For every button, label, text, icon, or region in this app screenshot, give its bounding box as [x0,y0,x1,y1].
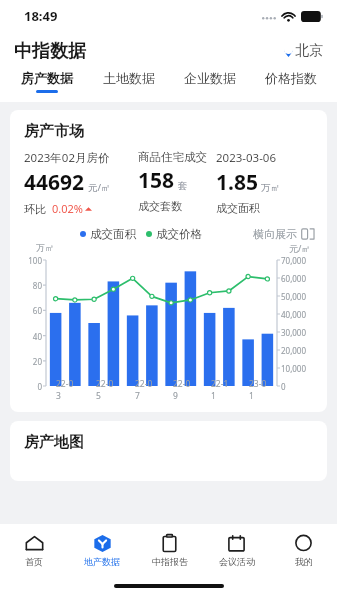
staticText: 20 [24,356,42,367]
staticText: 成交套数 [138,199,182,213]
staticText: 土地数据 [103,70,155,86]
staticText: 成交价格 [156,227,202,241]
staticText: 中指报告 [152,556,188,567]
button[interactable]: 房产数据 [6,70,88,102]
staticText: 70,000 [281,255,315,266]
staticText: 地产数据 [84,556,120,567]
staticText: 中指数据 [14,40,86,63]
staticText: 首页 [25,556,43,567]
staticText: 158 [138,166,175,195]
staticText: 商品住宅成交 [138,150,207,164]
button[interactable]: 价格指数 [250,70,331,102]
staticText: 价格指数 [265,70,317,86]
staticText: 23-01 [249,378,268,402]
staticText: 80 [24,280,42,291]
staticText: 成交面积 [90,227,136,241]
button[interactable]: 地产数据 [68,524,136,576]
staticText: 房产市场 [24,122,84,141]
button[interactable]: 横向展示 [253,227,315,241]
staticText: 我的 [295,556,313,567]
staticText: 横向展示 [253,227,297,241]
staticText: 60,000 [281,273,315,284]
other: 横向展示 [301,227,315,241]
staticText: 环比 [24,202,46,216]
staticText: 22-09 [173,378,192,402]
staticText: 50,000 [281,291,315,302]
staticText: 万㎡ [261,182,280,194]
staticText: 2023-03-06 [216,150,277,166]
staticText: 22-05 [96,378,116,402]
staticText: 会议活动 [219,556,255,567]
staticText: 40 [24,331,42,342]
staticText: 18:49 [24,7,58,25]
button[interactable]: 企业数据 [169,70,250,102]
staticText: 元/㎡ [289,242,311,254]
button[interactable]: 土地数据 [88,70,169,102]
button[interactable]: 北京 [284,42,323,60]
staticText: 22-07 [135,378,154,402]
staticText: 30,000 [281,327,315,338]
staticText: 22-11 [211,378,230,402]
staticText: 企业数据 [184,70,236,86]
staticText: 10,000 [281,363,315,374]
button[interactable]: 中指报告 [136,524,203,576]
staticText: 成交面积 [216,201,260,215]
staticText: 元/㎡ [88,181,111,194]
staticText: 40,000 [281,309,315,320]
staticText: 2023年02月房价 [24,150,110,166]
staticText: 20,000 [281,345,315,356]
staticText: 1.85 [216,168,258,197]
staticText: 0 [24,381,42,392]
button[interactable]: 首页 [0,524,68,576]
staticText: 套 [178,180,188,192]
staticText: 44692 [24,168,85,197]
staticText: 22-03 [56,378,76,402]
staticText: 北京 [295,42,323,60]
staticText: 100 [24,255,42,266]
button[interactable]: 我的 [270,524,337,576]
staticText: 0.02% [52,201,83,216]
staticText: 0 [281,381,315,392]
staticText: 房产数据 [21,70,73,86]
staticText: 60 [24,305,42,316]
staticText: 房产地图 [24,433,84,452]
staticText: 万㎡ [36,242,54,253]
button[interactable]: 会议活动 [203,524,270,576]
